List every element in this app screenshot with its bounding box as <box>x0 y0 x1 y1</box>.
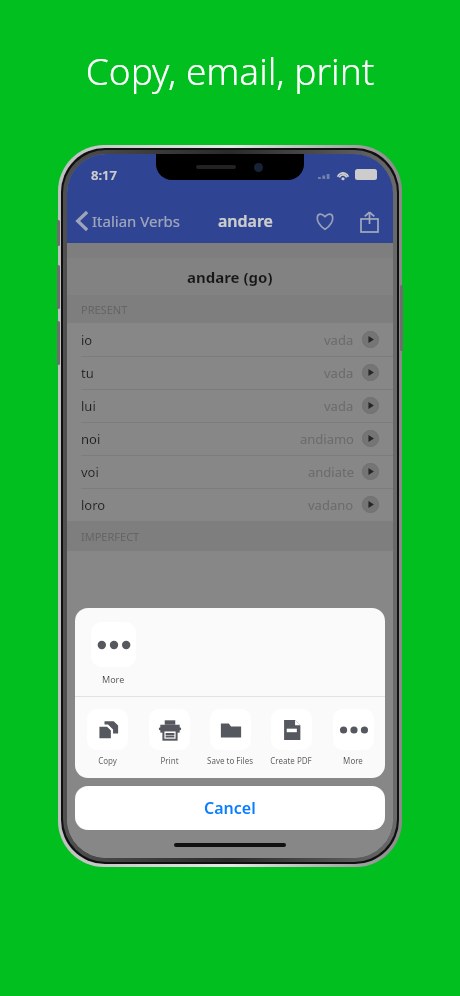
button[interactable]: Cancel <box>75 786 385 830</box>
staticText: noi <box>81 430 101 448</box>
staticText: lui <box>81 397 96 415</box>
button[interactable]: Italian Verbs <box>67 199 189 243</box>
staticText: More <box>343 755 363 766</box>
staticText: io <box>81 331 93 349</box>
staticText: loro <box>81 496 106 514</box>
staticText: Create PDF <box>270 755 312 766</box>
button[interactable]: noi <box>67 422 393 455</box>
staticText: Copy, email, print <box>0 45 460 95</box>
button[interactable]: Play <box>362 397 379 414</box>
staticText: 8:17 <box>91 166 117 184</box>
button[interactable]: Save to Files <box>201 709 259 766</box>
staticText: PRESENT <box>81 302 128 317</box>
staticText: IMPERFECT <box>81 529 140 544</box>
staticText: andiamo <box>300 430 354 448</box>
staticText: andiate <box>308 463 354 481</box>
button[interactable]: More <box>324 709 382 766</box>
button[interactable]: lui <box>67 389 393 422</box>
staticText: Cancel <box>204 797 256 819</box>
staticText: andare (go) <box>187 267 273 287</box>
button[interactable]: Play <box>362 463 379 480</box>
staticText: Save to Files <box>207 755 253 766</box>
staticText: vada <box>324 331 354 349</box>
button[interactable]: Favorite <box>303 199 347 243</box>
button[interactable]: io <box>67 323 393 356</box>
staticText: andare <box>218 210 273 232</box>
button[interactable]: loro <box>67 488 393 521</box>
staticText: tu <box>81 364 94 382</box>
button[interactable]: Share <box>347 199 391 243</box>
button[interactable]: Play <box>362 430 379 447</box>
button[interactable]: Play <box>362 331 379 348</box>
staticText: Italian Verbs <box>92 211 181 231</box>
button[interactable]: voi <box>67 455 393 488</box>
button[interactable]: Create PDF <box>262 709 320 766</box>
staticText: vada <box>324 397 354 415</box>
staticText: Print <box>160 755 179 766</box>
button[interactable]: Play <box>362 496 379 513</box>
button[interactable]: tu <box>67 356 393 389</box>
button[interactable]: More <box>91 622 136 685</box>
button[interactable]: Play <box>362 364 379 381</box>
button[interactable]: Print <box>140 709 198 766</box>
staticText: More <box>102 673 125 685</box>
staticText: vada <box>324 364 354 382</box>
button[interactable]: Copy <box>78 709 136 766</box>
staticText: voi <box>81 463 99 481</box>
staticText: Copy <box>98 755 117 766</box>
staticText: vadano <box>308 496 354 514</box>
